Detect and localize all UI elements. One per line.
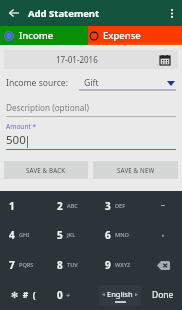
staticText: +: [66, 290, 71, 300]
button[interactable]: 9: [96, 250, 144, 280]
staticText: 2: [57, 199, 63, 213]
staticText: SAVE & NEW: [117, 166, 155, 174]
button[interactable]: 17-01-2016: [4, 50, 178, 69]
staticText: 9: [105, 258, 111, 272]
button[interactable]: SAVE & NEW: [93, 161, 178, 179]
staticText: PQRS: [19, 261, 34, 269]
staticText: ✻ # (: [11, 289, 37, 301]
staticText: 0: [57, 288, 63, 302]
button[interactable]: Gift: [79, 75, 176, 91]
button[interactable]: 5: [48, 220, 96, 250]
staticText: Income source:: [6, 77, 68, 89]
staticText: 4: [9, 228, 15, 242]
button[interactable]: 7: [0, 250, 48, 280]
staticText: ABC: [67, 202, 78, 210]
button[interactable]: 8: [48, 250, 96, 280]
button[interactable]: 4: [0, 220, 48, 250]
button[interactable]: Done: [144, 280, 182, 310]
staticText: DEF: [115, 202, 126, 210]
staticText: Done: [152, 289, 174, 301]
other: Pick date: [160, 55, 170, 65]
staticText: 3: [105, 199, 111, 213]
staticText: Gift: [84, 77, 99, 89]
staticText: 5: [57, 228, 63, 242]
staticText: 6: [105, 228, 111, 242]
staticText: 17-01-2016: [56, 54, 98, 65]
staticText: SAVE & BACK: [26, 166, 66, 174]
button[interactable]: 6: [96, 220, 144, 250]
button[interactable]: More options: [161, 0, 182, 26]
button[interactable]: Back: [0, 0, 28, 26]
button[interactable]: Backspace: [144, 250, 182, 280]
staticText: GHI: [19, 231, 30, 239]
staticText: English: [107, 289, 133, 299]
button[interactable]: Dash: [144, 191, 182, 220]
button[interactable]: SAVE & BACK: [4, 161, 88, 179]
staticText: 7: [9, 258, 15, 272]
staticText: ▸: [135, 291, 138, 297]
staticText: Add Statement: [28, 7, 100, 20]
staticText: Description (optional): [6, 102, 89, 113]
button[interactable]: ✻ # (: [0, 280, 48, 310]
button[interactable]: 3: [96, 191, 144, 220]
button[interactable]: 2: [48, 191, 96, 220]
staticText: Income: [19, 29, 54, 42]
button[interactable]: Income: [0, 26, 88, 45]
staticText: Expense: [103, 29, 141, 42]
button[interactable]: 0: [48, 280, 96, 310]
staticText: MNO: [115, 231, 129, 239]
staticText: TUV: [67, 261, 78, 269]
staticText: 1: [9, 199, 15, 213]
button[interactable]: Period: [144, 220, 182, 250]
staticText: Amount *: [6, 122, 37, 131]
staticText: ◂: [102, 291, 105, 297]
button[interactable]: Expense: [88, 26, 182, 45]
staticText: JKL: [67, 231, 76, 239]
staticText: 8: [57, 258, 63, 272]
button[interactable]: 1: [0, 191, 48, 220]
staticText: 500: [6, 132, 26, 148]
button[interactable]: ◂: [96, 280, 144, 310]
staticText: WXYZ: [115, 261, 131, 269]
